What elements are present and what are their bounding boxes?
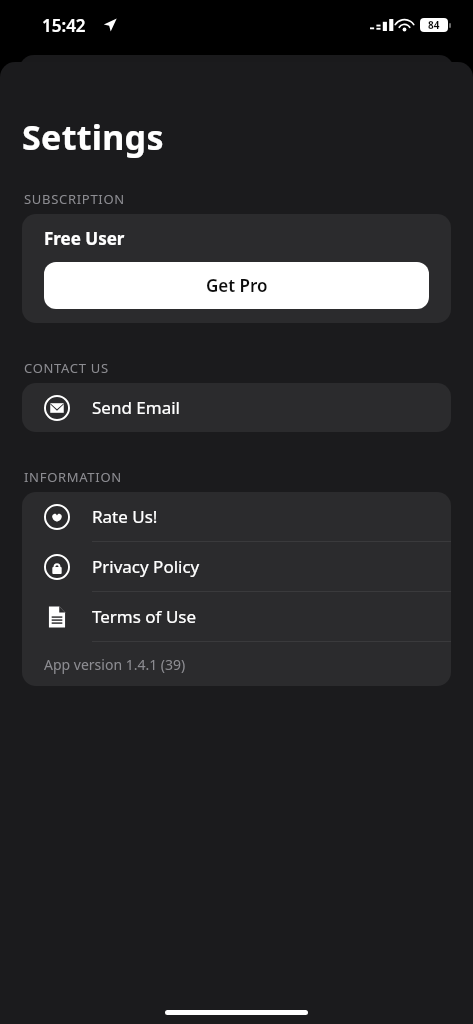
button[interactable]: Terms of Use xyxy=(22,592,451,642)
staticText: INFORMATION xyxy=(24,468,122,486)
button[interactable]: Rate Us! xyxy=(22,492,451,542)
staticText: SUBSCRIPTION xyxy=(24,190,125,208)
staticText: Send Email xyxy=(92,396,180,419)
staticText: Free User xyxy=(44,227,125,250)
staticText: CONTACT US xyxy=(24,359,109,377)
staticText: Privacy Policy xyxy=(92,555,200,578)
button[interactable]: Get Pro xyxy=(44,262,429,309)
staticText: Settings xyxy=(22,114,164,160)
staticText: App version 1.4.1 (39) xyxy=(44,655,186,674)
staticText: Rate Us! xyxy=(92,505,158,528)
staticText: Terms of Use xyxy=(92,605,197,628)
button[interactable]: Privacy Policy xyxy=(22,542,451,592)
button[interactable]: Send Email xyxy=(22,383,451,432)
staticText: 15:42 xyxy=(42,14,86,37)
staticText: Get Pro xyxy=(206,274,268,297)
staticText: 84 xyxy=(428,18,440,32)
